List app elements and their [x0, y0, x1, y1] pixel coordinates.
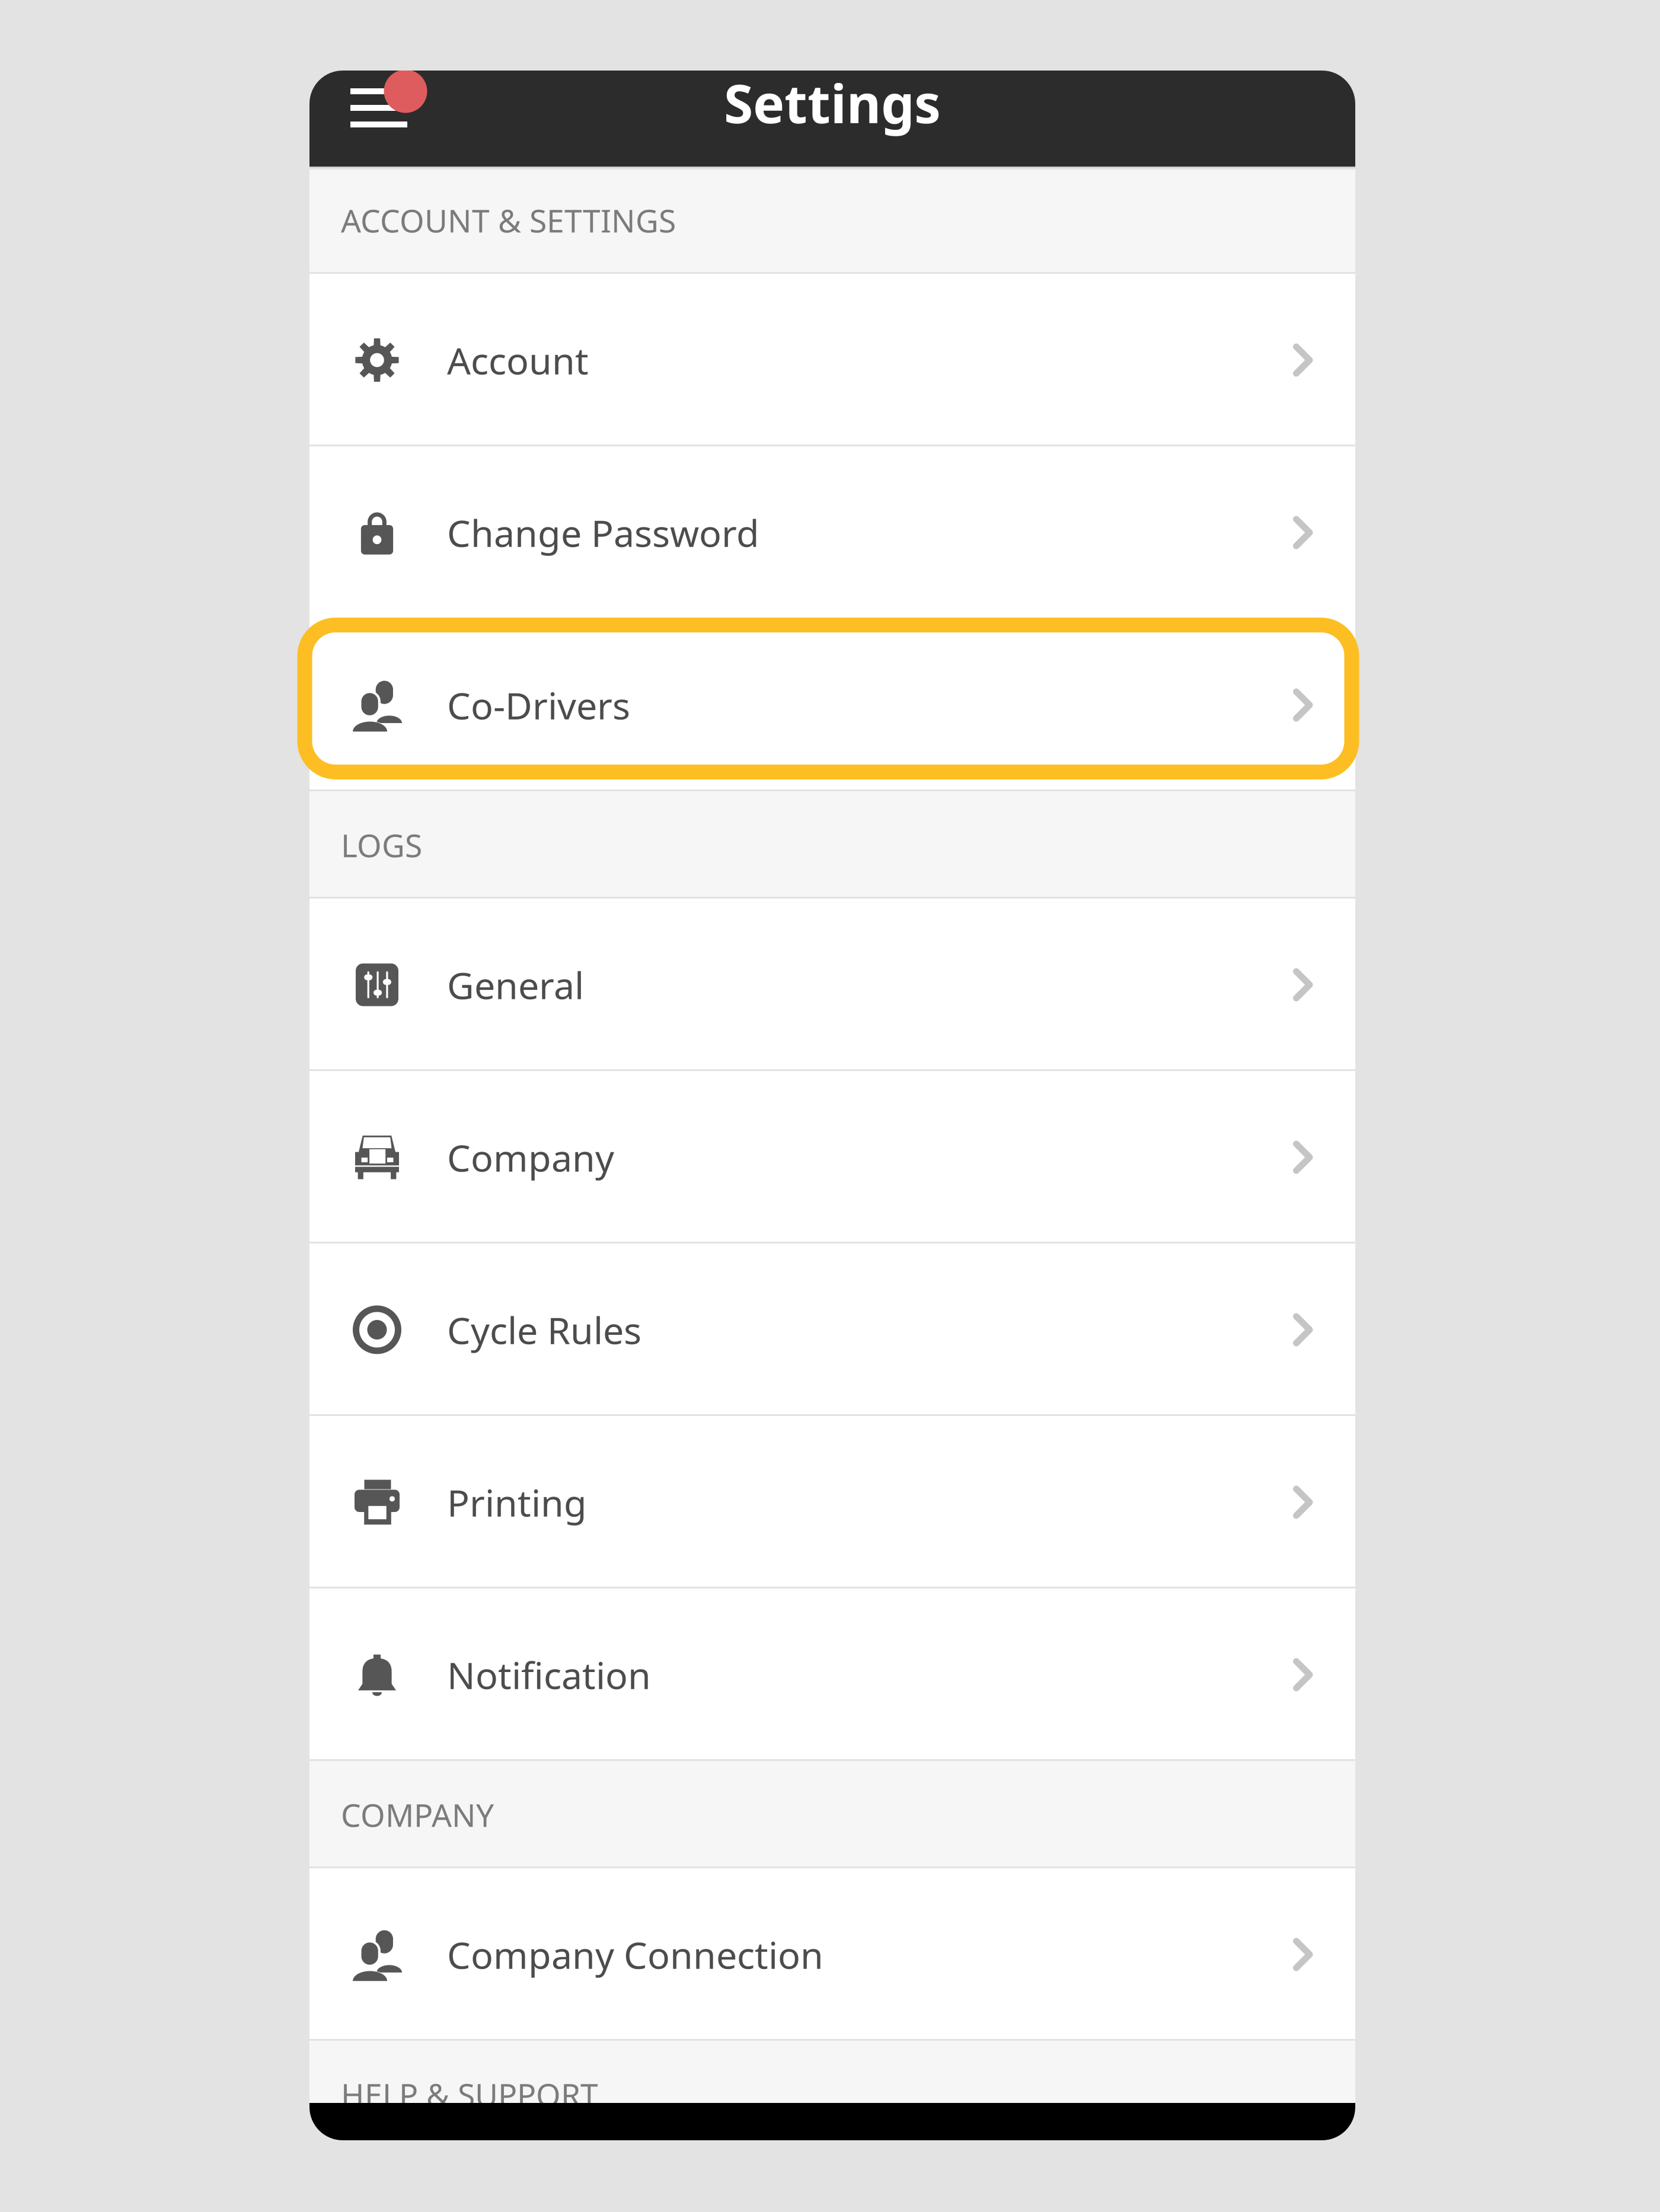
staticText: Company Connection	[447, 1930, 823, 1979]
button[interactable]: Cycle Rules	[309, 1244, 1355, 1416]
staticText: Account	[447, 335, 589, 385]
staticText: Printing	[447, 1478, 587, 1527]
button[interactable]: General	[309, 899, 1355, 1071]
staticText: HELP & SUPPORT	[341, 2073, 598, 2115]
staticText: Settings	[724, 67, 941, 138]
button[interactable]: Company	[309, 1071, 1355, 1244]
staticText: General	[447, 960, 584, 1009]
staticText: ACCOUNT & SETTINGS	[341, 199, 676, 241]
button[interactable]: Account	[309, 274, 1355, 446]
staticText: LOGS	[341, 824, 422, 866]
button[interactable]: Company Connection	[309, 1868, 1355, 2041]
staticText: Notification	[447, 1650, 651, 1699]
staticText: Change Password	[447, 508, 759, 557]
staticText: Cycle Rules	[447, 1305, 641, 1354]
staticText: Co-Drivers	[447, 680, 630, 730]
button[interactable]: Menu	[350, 71, 451, 167]
button[interactable]: Notification	[309, 1588, 1355, 1761]
staticText: COMPANY	[341, 1794, 494, 1836]
staticText: Company	[447, 1133, 614, 1182]
button[interactable]: Change Password	[309, 446, 1355, 619]
button[interactable]: Co-Drivers	[309, 619, 1355, 791]
button[interactable]: Printing	[309, 1416, 1355, 1588]
